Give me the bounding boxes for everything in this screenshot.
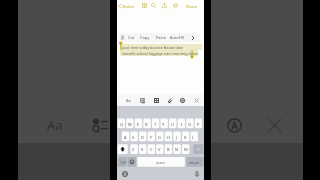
staticText: S xyxy=(132,135,135,140)
staticText: N xyxy=(175,147,179,152)
button[interactable]: I xyxy=(178,119,185,129)
button[interactable]: Drag handle xyxy=(119,33,125,42)
staticText: B xyxy=(167,147,170,152)
staticText: E xyxy=(137,122,140,127)
button[interactable]: Grid view xyxy=(140,1,149,10)
button[interactable]: K xyxy=(182,132,189,142)
staticText: stonelle school luggage nars morning tic… xyxy=(120,51,198,56)
button[interactable]: B xyxy=(165,144,172,154)
staticText: X xyxy=(141,147,144,152)
button[interactable]: J xyxy=(173,132,180,142)
staticText: Q xyxy=(120,122,124,127)
button[interactable]: Aa xyxy=(122,94,134,106)
button[interactable]: N xyxy=(173,144,180,154)
button[interactable]: AutoFill xyxy=(170,33,184,42)
staticText: space xyxy=(156,160,166,165)
button[interactable]: Y xyxy=(160,119,167,129)
button[interactable]: More actions xyxy=(187,33,199,42)
button[interactable]: U xyxy=(169,119,176,129)
button[interactable]: Space xyxy=(137,157,185,167)
button[interactable]: C xyxy=(148,144,155,154)
button[interactable]: E xyxy=(135,119,142,129)
staticText: C xyxy=(150,147,153,152)
button[interactable]: Dismiss keyboard xyxy=(190,94,202,106)
staticText: Aa xyxy=(47,116,63,134)
button[interactable]: Paste xyxy=(154,33,168,42)
staticText: Done xyxy=(186,3,197,9)
button[interactable]: Dictate xyxy=(192,169,201,178)
button[interactable]: More options xyxy=(171,1,180,10)
staticText: D xyxy=(141,135,144,140)
staticText: Aa xyxy=(126,98,131,103)
staticText: Notes xyxy=(122,3,134,9)
staticText: post men today bounce Bouse labe xyxy=(120,45,183,50)
button[interactable]: Table xyxy=(150,94,162,106)
button[interactable]: Copy xyxy=(138,33,152,42)
button[interactable]: Shift xyxy=(118,144,128,154)
staticText: return xyxy=(189,160,200,165)
staticText: I xyxy=(181,122,183,127)
button[interactable]: Share xyxy=(160,1,169,10)
staticText: Paste xyxy=(156,35,166,40)
staticText: M xyxy=(184,147,188,152)
staticText: Z xyxy=(132,147,135,152)
staticText: Cut xyxy=(128,35,135,40)
button[interactable]: Change language xyxy=(120,169,129,178)
button[interactable]: Done xyxy=(185,2,197,10)
staticText: Copy xyxy=(140,35,150,40)
button[interactable]: W xyxy=(126,119,133,129)
button[interactable]: Backspace xyxy=(193,144,203,154)
staticText: U xyxy=(171,122,174,127)
staticText: W xyxy=(128,122,132,127)
button[interactable]: Emoji xyxy=(128,157,137,167)
button[interactable]: F xyxy=(148,132,155,142)
button[interactable]: Checklist options xyxy=(87,114,112,136)
button[interactable]: Q xyxy=(118,119,125,129)
staticText: K xyxy=(184,135,187,140)
staticText: V xyxy=(158,147,161,152)
button[interactable]: Checklist xyxy=(136,94,148,106)
staticText: L xyxy=(192,135,195,140)
staticText: AutoFill xyxy=(170,35,184,40)
button[interactable]: D xyxy=(139,132,146,142)
staticText: F xyxy=(150,135,153,140)
button[interactable]: S xyxy=(130,132,137,142)
button[interactable]: M xyxy=(182,144,189,154)
staticText: A xyxy=(124,135,127,140)
staticText: Y xyxy=(162,122,165,127)
staticText: P xyxy=(197,122,200,127)
button[interactable]: O xyxy=(186,119,193,129)
staticText: 123 xyxy=(120,160,126,165)
button[interactable]: Search xyxy=(149,1,158,10)
staticText: T xyxy=(154,122,157,127)
button[interactable]: L xyxy=(190,132,197,142)
button[interactable]: P xyxy=(195,119,202,129)
staticText: H xyxy=(167,135,170,140)
button[interactable]: G xyxy=(156,132,163,142)
button[interactable]: Return xyxy=(186,157,203,167)
staticText: R xyxy=(145,122,148,127)
button[interactable]: H xyxy=(165,132,172,142)
button[interactable]: Close xyxy=(262,114,286,136)
button[interactable]: Attachment xyxy=(163,94,175,106)
button[interactable]: App icon xyxy=(222,114,246,136)
button[interactable]: X xyxy=(139,144,146,154)
button[interactable]: Numbers xyxy=(118,157,127,167)
button[interactable]: Z xyxy=(130,144,137,154)
button[interactable]: Cut xyxy=(124,33,138,42)
button[interactable]: V xyxy=(156,144,163,154)
button[interactable]: Aa xyxy=(42,114,68,136)
button[interactable]: T xyxy=(152,119,159,129)
button[interactable]: R xyxy=(143,119,150,129)
staticText: O xyxy=(188,122,192,127)
button[interactable]: Camera xyxy=(176,94,188,106)
button[interactable]: A xyxy=(122,132,129,142)
staticText: G xyxy=(158,135,161,140)
button[interactable]: Notes xyxy=(118,2,134,10)
staticText: J xyxy=(176,135,178,140)
